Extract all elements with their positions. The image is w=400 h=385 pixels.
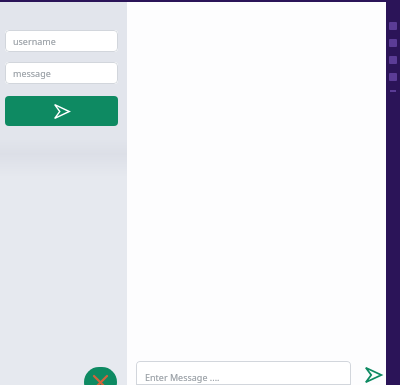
button[interactable]: Tool 2 — [389, 39, 397, 47]
button[interactable]: message — [5, 62, 118, 84]
staticText: Enter Message .... — [145, 371, 220, 383]
button[interactable]: Tool 3 — [389, 56, 397, 64]
button[interactable]: Send message — [360, 361, 386, 385]
staticText: message — [13, 67, 51, 79]
button[interactable]: Close — [84, 367, 117, 385]
staticText: username — [13, 35, 56, 47]
button[interactable]: Tool 1 — [389, 22, 397, 30]
button[interactable]: username — [5, 30, 118, 52]
button[interactable]: Enter Message .... — [136, 361, 351, 385]
button[interactable]: Send — [5, 96, 118, 126]
button[interactable]: Tool 4 — [389, 73, 397, 81]
